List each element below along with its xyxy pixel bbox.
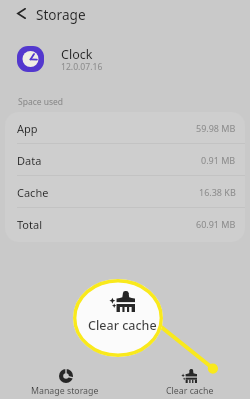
- staticText: Manage storage: [31, 385, 99, 397]
- staticText: App: [17, 121, 38, 136]
- button[interactable]: Clear cache: [73, 279, 163, 357]
- button[interactable]: Data: [5, 144, 245, 176]
- button[interactable]: Clear cache: [125, 355, 250, 399]
- button[interactable]: Manage storage: [0, 355, 125, 399]
- staticText: 60.91 MB: [196, 218, 236, 230]
- staticText: Clear cache: [166, 385, 214, 397]
- staticText: 12.0.07.16: [61, 61, 103, 73]
- staticText: Data: [17, 153, 42, 168]
- staticText: 16.38 KB: [199, 186, 236, 198]
- staticText: 0.91 MB: [201, 154, 236, 166]
- button[interactable]: Cache: [5, 176, 245, 208]
- staticText: Clock: [61, 46, 93, 63]
- staticText: Storage: [36, 5, 86, 24]
- staticText: Cache: [17, 185, 49, 200]
- staticText: 59.98 MB: [196, 122, 236, 134]
- staticText: Space used: [18, 96, 64, 108]
- staticText: Total: [17, 217, 42, 232]
- button[interactable]: Total: [5, 208, 245, 240]
- button[interactable]: Back: [8, 0, 34, 26]
- staticText: Clear cache: [88, 317, 157, 334]
- button[interactable]: App: [5, 112, 245, 144]
